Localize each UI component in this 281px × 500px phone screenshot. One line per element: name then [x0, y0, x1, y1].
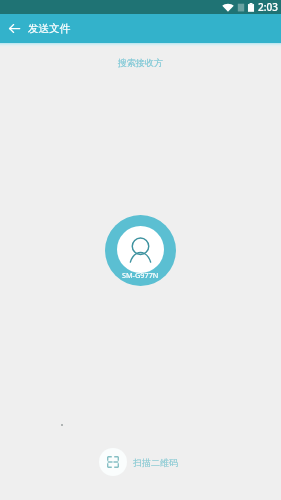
staticText: SM-G977N — [122, 270, 159, 280]
staticText: 发送文件 — [28, 22, 70, 35]
staticText: 扫描二维码 — [133, 457, 178, 468]
button[interactable]: 搜索接收方 — [118, 57, 163, 68]
button[interactable]: 扫描二维码 — [99, 448, 178, 476]
staticText: 2:03 — [258, 0, 278, 14]
button[interactable]: Back — [0, 14, 28, 43]
button[interactable]: SM-G977N — [105, 215, 176, 286]
